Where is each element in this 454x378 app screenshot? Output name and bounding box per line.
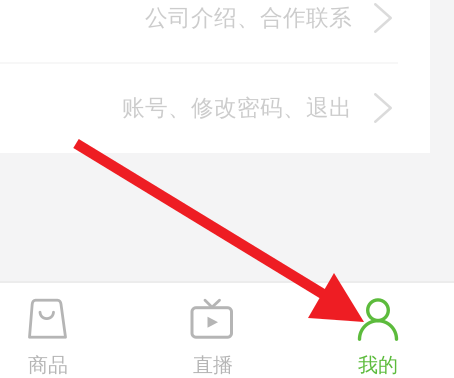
button[interactable]: 直播 xyxy=(138,286,288,378)
button[interactable]: 账号、修改密码、退出 xyxy=(0,63,430,153)
staticText: 直播 xyxy=(193,353,233,377)
button[interactable]: 商品 xyxy=(0,286,123,378)
staticText: 账号、修改密码、退出 xyxy=(122,94,352,122)
staticText: 我的 xyxy=(358,353,398,377)
button[interactable]: 我的 xyxy=(303,286,453,378)
staticText: 公司介绍、合作联系 xyxy=(145,4,352,32)
button[interactable]: 公司介绍、合作联系 xyxy=(0,0,430,63)
staticText: 商品 xyxy=(28,353,68,377)
